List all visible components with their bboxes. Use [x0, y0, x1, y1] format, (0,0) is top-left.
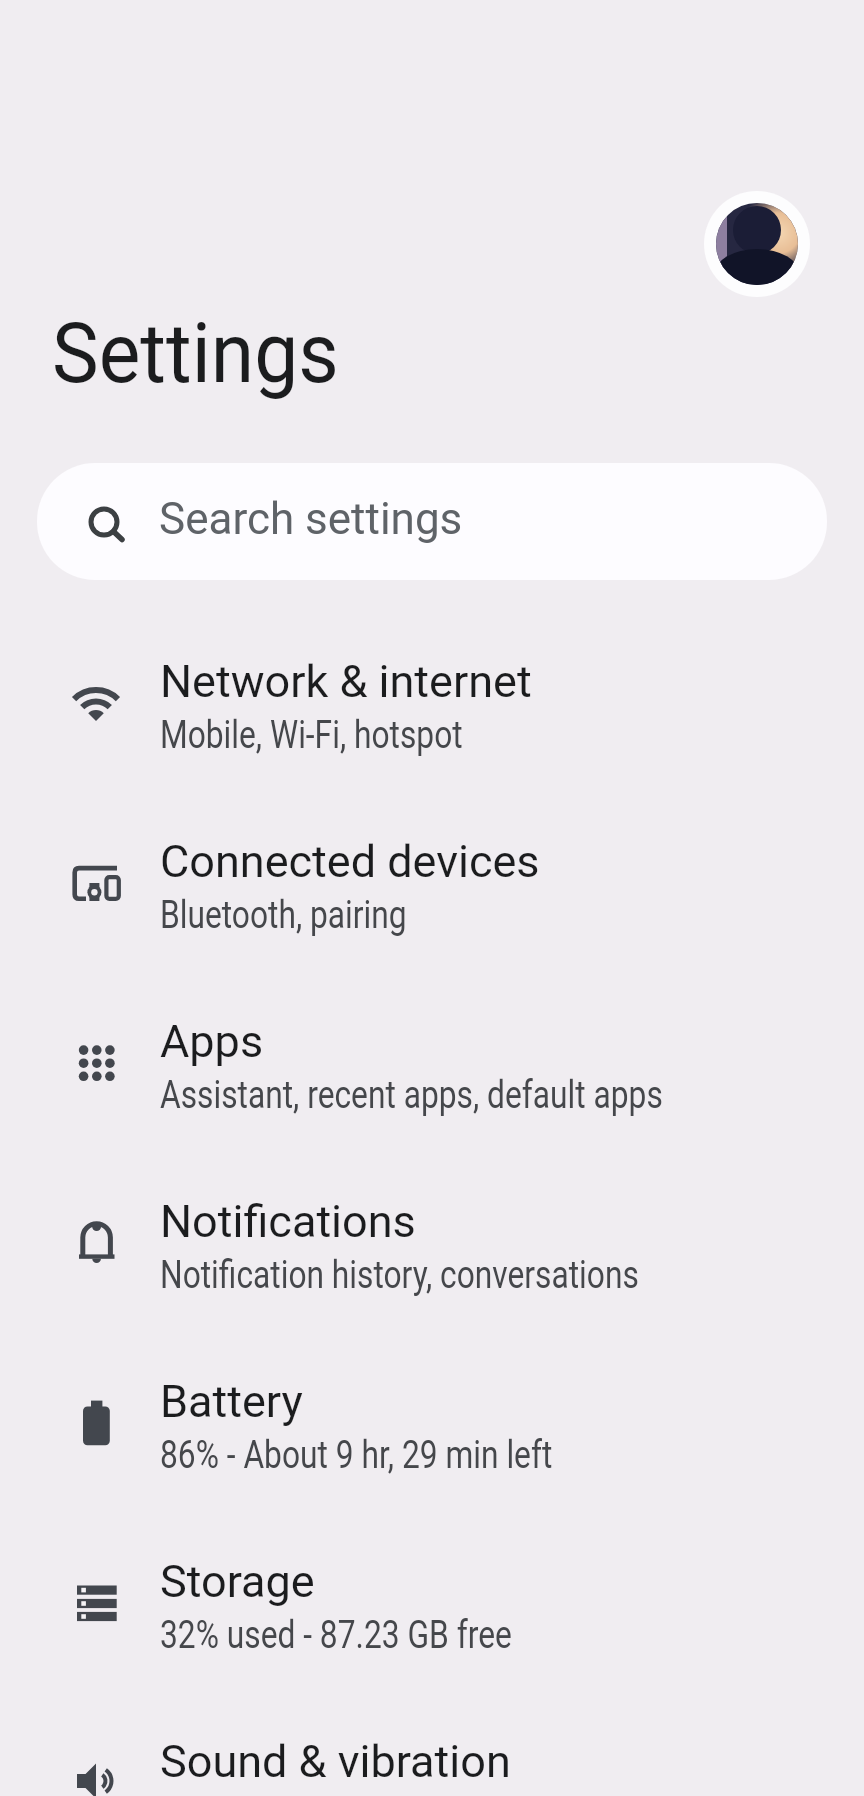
button[interactable]: Connected devices: [0, 798, 864, 978]
staticText: Search settings: [159, 493, 463, 545]
button[interactable]: Apps: [0, 978, 864, 1158]
staticText: 86% - About 9 hr, 29 min left: [160, 1433, 552, 1478]
staticText: Assistant, recent apps, default apps: [160, 1073, 663, 1118]
staticText: Sound & vibration: [160, 1735, 511, 1788]
button[interactable]: Storage: [0, 1518, 864, 1698]
button[interactable]: Battery: [0, 1338, 864, 1518]
staticText: Notification history, conversations: [160, 1253, 639, 1298]
staticText: 32% used - 87.23 GB free: [160, 1613, 512, 1658]
button[interactable]: Network & internet: [0, 618, 864, 798]
staticText: Bluetooth, pairing: [160, 893, 407, 938]
staticText: Notifications: [160, 1195, 416, 1248]
staticText: Connected devices: [160, 835, 540, 888]
staticText: Network & internet: [160, 655, 532, 708]
staticText: Battery: [160, 1375, 303, 1428]
button[interactable]: Notifications: [0, 1158, 864, 1338]
staticText: Apps: [160, 1015, 264, 1068]
button[interactable]: Search settings: [37, 463, 827, 580]
staticText: Storage: [160, 1555, 315, 1608]
button[interactable]: Sound & vibration: [0, 1698, 864, 1796]
staticText: Mobile, Wi-Fi, hotspot: [160, 713, 463, 758]
staticText: Settings: [52, 304, 339, 402]
button[interactable]: [704, 191, 810, 297]
